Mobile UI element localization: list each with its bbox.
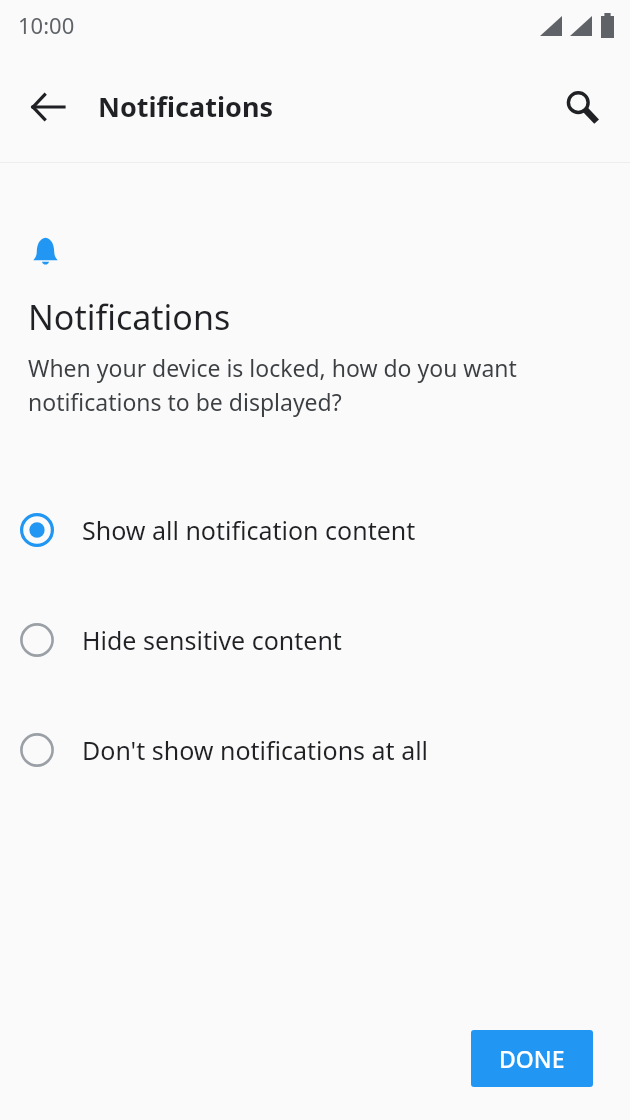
staticText: Show all notification content [82, 513, 416, 547]
button[interactable]: Back [22, 81, 74, 133]
button[interactable]: Don't show notifications at all [0, 695, 630, 805]
button[interactable]: Search [556, 81, 608, 133]
staticText: When your device is locked, how do you w… [28, 352, 517, 417]
staticText: DONE [499, 1043, 565, 1074]
staticText: 10:00 [18, 10, 75, 40]
staticText: Don't show notifications at all [82, 733, 429, 767]
button[interactable]: Hide sensitive content [0, 585, 630, 695]
button[interactable]: DONE [471, 1030, 593, 1087]
staticText: Notifications [28, 294, 231, 340]
staticText: Hide sensitive content [82, 623, 342, 657]
button[interactable]: Show all notification content [0, 475, 630, 585]
staticText: Notifications [98, 88, 273, 125]
